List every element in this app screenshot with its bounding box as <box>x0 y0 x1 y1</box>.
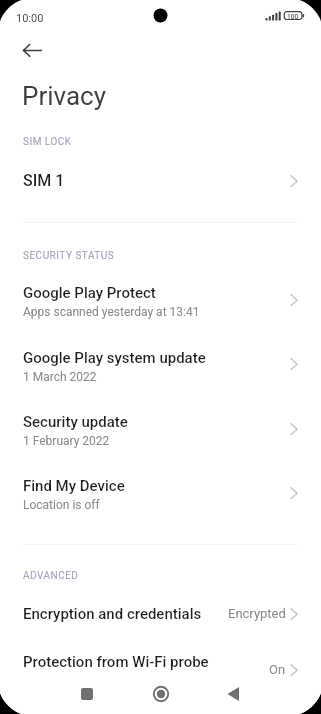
staticText: ADVANCED <box>23 570 79 582</box>
button[interactable]: Back <box>214 675 254 713</box>
button[interactable] <box>0 465 321 513</box>
button[interactable]: Recent apps <box>67 675 107 713</box>
button[interactable] <box>0 158 321 196</box>
staticText: Encryption and credentials <box>23 605 202 623</box>
staticText: 1 March 2022 <box>23 370 97 384</box>
button[interactable] <box>0 592 321 630</box>
staticText: Apps scanned yesterday at 13:41 <box>23 305 200 319</box>
button[interactable] <box>0 401 321 449</box>
button[interactable] <box>0 337 321 385</box>
staticText: Find My Device <box>23 477 125 495</box>
staticText: On <box>269 662 286 677</box>
staticText: Google Play system update <box>23 349 206 367</box>
button[interactable]: Back <box>13 31 51 69</box>
staticText: Location is off <box>23 498 100 512</box>
button[interactable] <box>0 272 321 320</box>
staticText: SECURITY STATUS <box>23 250 115 262</box>
staticText: Security update <box>23 413 128 431</box>
button[interactable] <box>0 640 321 678</box>
staticText: 10:00 <box>16 12 44 25</box>
staticText: Google Play Protect <box>23 284 156 302</box>
staticText: 1 February 2022 <box>23 434 110 448</box>
button[interactable]: Home <box>141 675 181 713</box>
staticText: 100 <box>287 13 299 21</box>
staticText: Encrypted <box>228 606 286 621</box>
staticText: Protection from Wi-Fi probe <box>23 653 209 671</box>
staticText: SIM LOCK <box>23 136 72 148</box>
staticText: Privacy <box>22 81 106 111</box>
staticText: SIM 1 <box>23 171 65 190</box>
